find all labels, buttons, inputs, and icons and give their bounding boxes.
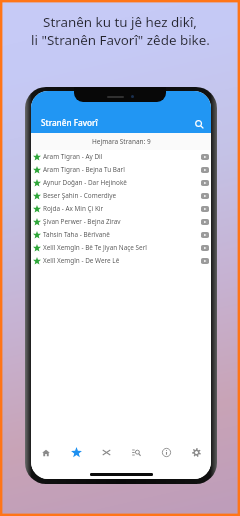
staticText: Xelîl Xemgîn - De Were Lê	[43, 256, 120, 265]
button[interactable]: Aram Tigran - Ay Dil	[31, 150, 211, 163]
button[interactable]: Shuffle	[91, 443, 121, 462]
button[interactable]: Settings	[181, 443, 211, 462]
button[interactable]: Favourites	[61, 443, 91, 462]
staticText: li "Stranên Favorî" zêde bike.	[31, 31, 210, 49]
button[interactable]: Şivan Perwer - Bejna Zirav	[31, 215, 211, 228]
button[interactable]: Rojda - Ax Min Çi Kir	[31, 202, 211, 215]
button[interactable]: Info	[151, 443, 181, 462]
button[interactable]: Xelîl Xemgîn - Bê Te Jiyan Naçe Serî	[31, 241, 211, 254]
staticText: Aram Tigran - Bejna Tu Barî	[43, 165, 125, 174]
staticText: Xelîl Xemgîn - Bê Te Jiyan Naçe Serî	[43, 243, 148, 252]
button[interactable]: Aram Tigran - Bejna Tu Barî	[31, 163, 211, 176]
button[interactable]: Search songs	[121, 443, 151, 462]
button[interactable]: Home	[31, 443, 61, 462]
staticText: Hejmara Stranan: 9	[92, 137, 151, 146]
button[interactable]: Xelîl Xemgîn - De Were Lê	[31, 254, 211, 267]
staticText: Tahsin Taha - Bêrîvanê	[43, 230, 110, 239]
button[interactable]: Search	[191, 116, 207, 132]
button[interactable]: Tahsin Taha - Bêrîvanê	[31, 228, 211, 241]
staticText: Aynur Doğan - Dar Hejinokê	[43, 178, 127, 187]
button[interactable]: Beser Şahin - Comerdiye	[31, 189, 211, 202]
staticText: Stranên ku tu jê hez dikî,	[43, 13, 197, 31]
button[interactable]: Aynur Doğan - Dar Hejinokê	[31, 176, 211, 189]
staticText: Rojda - Ax Min Çi Kir	[43, 204, 104, 213]
staticText: Beser Şahin - Comerdiye	[43, 191, 117, 200]
staticText: Aram Tigran - Ay Dil	[43, 152, 103, 161]
staticText: Stranên Favorî	[41, 117, 98, 128]
staticText: Şivan Perwer - Bejna Zirav	[43, 217, 121, 226]
